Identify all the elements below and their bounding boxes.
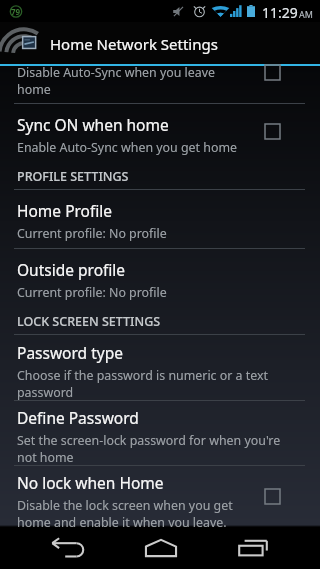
button[interactable]: Toggle checkbox [253,112,291,150]
staticText: PROFILE SETTINGS [17,168,129,185]
staticText: Password type [17,342,123,363]
staticText: Home Profile [17,200,113,221]
staticText: Home Network Settings [50,34,218,54]
staticText: Outside profile [17,259,126,280]
button[interactable]: Home [138,530,183,566]
staticText: Current profile: No profile [17,225,167,242]
staticText: Choose if the password is numeric or a t… [17,367,283,400]
button[interactable]: Define Password [0,407,320,465]
staticText: Sync ON when home [17,114,169,135]
staticText: Set the screen-lock password for when yo… [17,432,283,465]
button[interactable]: Toggle checkbox [253,53,291,91]
staticText: No lock when Home [17,472,164,493]
staticText: LOCK SCREEN SETTINGS [17,313,161,330]
staticText: AM [299,8,313,20]
staticText: Disable Auto-Sync when you leave home [17,64,216,97]
button[interactable]: Recent apps [230,530,275,566]
staticText: Define Password [17,407,139,428]
button[interactable]: No lock when Home [0,472,320,530]
staticText: Disable the lock screen when you get hom… [17,497,252,530]
button[interactable]: Home Network Settings [0,22,320,64]
staticText: 11:29 [262,3,298,22]
staticText: 79 [11,6,21,17]
button[interactable]: Back [46,530,91,566]
button[interactable]: Password type [0,342,320,400]
staticText: Current profile: No profile [17,284,167,301]
button[interactable]: Home Profile [0,200,320,242]
button[interactable]: Sync ON when home [0,114,320,156]
button[interactable]: Outside profile [0,259,320,301]
button[interactable]: Disable Auto-Sync when you leave home [0,55,320,88]
staticText: Enable Auto-Sync when you get home [17,139,237,156]
button[interactable]: Toggle checkbox [253,477,291,515]
